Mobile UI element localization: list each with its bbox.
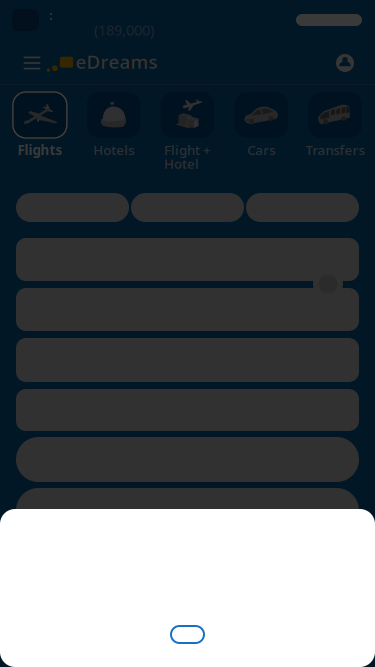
button[interactable]: Flight + Hotel <box>151 92 224 172</box>
button[interactable]: Menu <box>0 41 44 85</box>
button[interactable]: Flights <box>3 92 77 159</box>
staticText: Flight + Hotel <box>164 141 211 172</box>
staticText: Cars <box>247 141 275 159</box>
staticText: Hotels <box>93 141 134 159</box>
staticText: (189,000) <box>94 20 154 39</box>
staticText: Transfers <box>306 141 365 159</box>
staticText: eDreams <box>75 49 157 74</box>
button[interactable]: Transfers <box>298 92 372 159</box>
staticText: Flights <box>17 141 62 159</box>
button[interactable]: Cars <box>224 92 298 159</box>
button[interactable]: Account <box>323 41 367 85</box>
button[interactable]: Hotels <box>77 92 151 159</box>
